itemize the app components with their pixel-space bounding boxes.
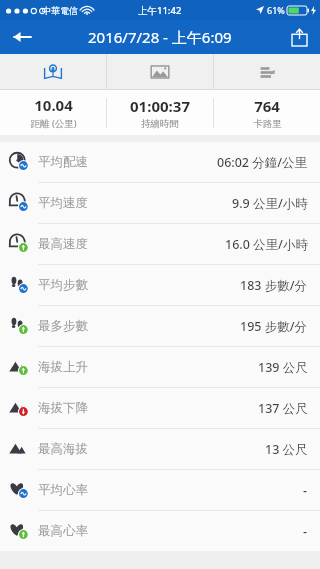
staticText: 平均配速 — [38, 154, 88, 170]
button[interactable]: 海拔下降 — [0, 388, 320, 428]
staticText: 最高心率 — [38, 523, 88, 539]
button[interactable]: 海拔上升 — [0, 347, 320, 387]
button[interactable]: 平均心率 — [0, 470, 320, 510]
staticText: - — [303, 482, 308, 499]
staticText: 139 公尺 — [258, 359, 308, 376]
staticText: 卡路里 — [253, 118, 282, 130]
button[interactable]: Share — [278, 20, 320, 54]
button[interactable]: 最高心率 — [0, 511, 320, 551]
button[interactable]: 764 — [214, 90, 320, 135]
button[interactable]: Stats — [214, 54, 320, 89]
staticText: 平均步數 — [38, 277, 88, 293]
button[interactable]: 10.04 — [0, 90, 106, 135]
button[interactable]: Map — [0, 54, 106, 89]
button[interactable]: 最多步數 — [0, 306, 320, 346]
button[interactable]: 最高海拔 — [0, 429, 320, 469]
staticText: 持續時間 — [141, 118, 179, 130]
staticText: 16.0 公里/小時 — [225, 236, 308, 253]
staticText: 距離 (公里) — [30, 117, 77, 130]
staticText: - — [303, 523, 308, 540]
staticText: 平均心率 — [38, 482, 88, 498]
button[interactable]: 平均配速 — [0, 142, 320, 182]
staticText: 06:02 分鐘/公里 — [217, 154, 308, 171]
staticText: 13 公尺 — [265, 441, 308, 458]
staticText: 海拔下降 — [38, 400, 88, 416]
button[interactable]: 平均步數 — [0, 265, 320, 305]
staticText: 最高海拔 — [38, 441, 88, 457]
button[interactable]: 最高速度 — [0, 224, 320, 264]
staticText: 中華電信 — [42, 5, 78, 16]
staticText: 海拔上升 — [38, 359, 88, 375]
button[interactable]: 平均速度 — [0, 183, 320, 223]
staticText: 最多步數 — [38, 318, 88, 334]
button[interactable]: 01:00:37 — [107, 90, 213, 135]
staticText: 01:00:37 — [130, 96, 190, 116]
staticText: 最高速度 — [38, 236, 88, 252]
button[interactable]: Back — [0, 20, 44, 54]
staticText: 10.04 — [34, 95, 73, 115]
staticText: 61% — [267, 4, 285, 16]
staticText: 195 步數/分 — [240, 318, 308, 335]
staticText: 764 — [254, 96, 280, 116]
staticText: 2016/7/28 - 上午6:09 — [88, 27, 232, 47]
staticText: 上午11:42 — [138, 4, 182, 17]
staticText: 平均速度 — [38, 195, 88, 211]
staticText: 137 公尺 — [258, 400, 308, 417]
staticText: 9.9 公里/小時 — [232, 195, 308, 212]
button[interactable]: Photos — [107, 54, 213, 89]
staticText: 183 步數/分 — [240, 277, 308, 294]
